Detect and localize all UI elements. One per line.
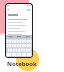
button[interactable]: More options (26, 9, 31, 11)
button[interactable]: Keyboard (6, 35, 32, 57)
button[interactable]: Back (7, 8, 10, 11)
staticText: Notebook (7, 60, 37, 68)
button[interactable] (6, 12, 32, 35)
